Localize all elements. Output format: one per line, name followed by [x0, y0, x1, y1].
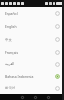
- staticText: Español: [5, 11, 55, 16]
- button[interactable]: Español: [0, 7, 64, 20]
- button[interactable]: Recents: [47, 96, 50, 99]
- staticText: 中文: [5, 38, 55, 42]
- staticText: العربية: [5, 62, 55, 66]
- staticText: Bahasa Indonesia: [5, 74, 55, 79]
- button[interactable]: 한국어: [0, 82, 64, 94]
- button[interactable]: Back: [21, 96, 24, 99]
- staticText: 한국어: [5, 86, 55, 90]
- button[interactable]: English: [0, 20, 64, 33]
- button[interactable]: العربية: [0, 58, 64, 70]
- staticText: English: [5, 24, 55, 29]
- button[interactable]: 中文: [0, 33, 64, 46]
- button[interactable]: Français: [0, 46, 64, 58]
- staticText: Français: [5, 50, 55, 55]
- button[interactable]: Bahasa Indonesia: [0, 70, 64, 82]
- button[interactable]: Home: [34, 96, 37, 99]
